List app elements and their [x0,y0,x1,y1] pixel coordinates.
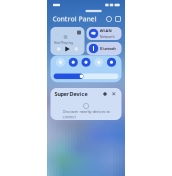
staticText: Discover nearby devices to connect [62,109,109,119]
staticText: Super Device [54,90,87,98]
button[interactable]: Settings [106,16,111,21]
button[interactable]: Edit [115,16,120,21]
button[interactable]: Close [111,91,116,96]
button[interactable]: Do not disturb [81,58,90,67]
button[interactable]: Rotation lock [94,58,103,67]
button[interactable]: Hotspot [107,58,116,67]
staticText: Network [99,34,114,39]
staticText: Not Playing [53,40,72,45]
button[interactable]: Bluetooth [86,42,121,55]
button[interactable]: Device settings [103,92,107,96]
button[interactable]: Text size [56,58,65,67]
staticText: WLAN [99,28,111,33]
button[interactable]: WLAN [86,27,121,40]
staticText: Bluetooth [99,46,115,51]
button[interactable]: Flashlight [69,58,78,67]
staticText: ✕ [111,91,115,97]
button[interactable]: Not Playing [50,27,84,55]
staticText: Control Panel [52,15,96,23]
